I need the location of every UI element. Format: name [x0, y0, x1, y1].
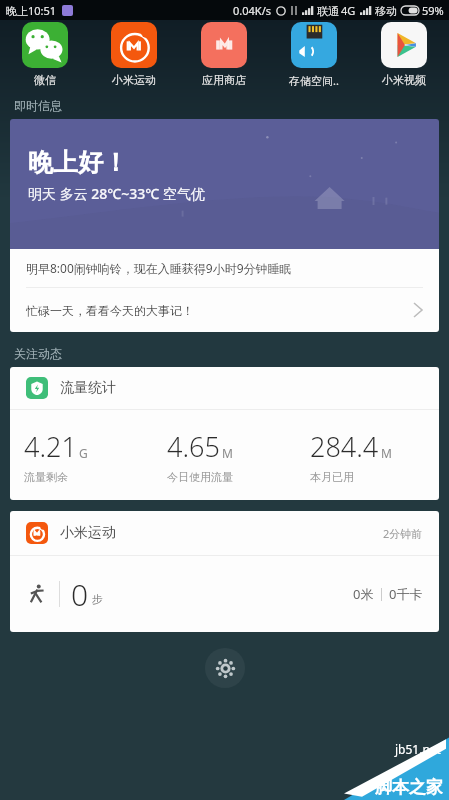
staticText: 0 [71, 574, 89, 615]
staticText: 明早8:00闹钟响铃，现在入睡获得9小时9分钟睡眠 [26, 260, 292, 276]
staticText: 流量剩余 [24, 470, 68, 484]
staticText: 4.65 [167, 428, 220, 465]
staticText: 4G [341, 3, 356, 18]
staticText: 小米视频 [382, 73, 426, 87]
staticText: 忙碌一天，看看今天的大事记！ [26, 303, 194, 318]
staticText: 关注动态 [14, 346, 62, 361]
button[interactable]: 小米视频 [359, 22, 449, 87]
button[interactable]: 设置 [205, 648, 245, 688]
button[interactable]: 小米运动 [89, 22, 179, 87]
staticText: 晚上10:51 [6, 3, 57, 18]
staticText: G [79, 445, 88, 461]
staticText: 284.4 [310, 428, 379, 465]
staticText: M [381, 445, 392, 461]
button[interactable]: 存储空间.. [269, 22, 359, 88]
button[interactable]: 小米运动 [10, 511, 439, 632]
staticText: 晚上好！ [28, 147, 128, 178]
staticText: 移动 [375, 4, 397, 18]
staticText: 流量统计 [60, 379, 116, 397]
button[interactable]: 晚上好！ [10, 119, 439, 332]
staticText: 本月已用 [310, 470, 354, 484]
staticText: 即时信息 [14, 98, 62, 113]
staticText: 存储空间.. [289, 73, 339, 88]
staticText: 今日使用流量 [167, 470, 233, 484]
staticText: 4.21 [24, 428, 77, 465]
staticText: 应用商店 [202, 73, 246, 87]
staticText: 小米运动 [112, 73, 156, 87]
staticText: 0.04K/s [233, 3, 271, 18]
staticText: 0米 [353, 585, 374, 603]
staticText: M [222, 445, 233, 461]
button[interactable]: 流量统计 [10, 367, 439, 500]
staticText: 小米运动 [60, 524, 116, 542]
staticText: 2分钟前 [383, 526, 423, 541]
button[interactable]: 微信 [0, 22, 89, 87]
staticText: 0千卡 [389, 585, 423, 603]
staticText: 明天 多云 28℃~33℃ 空气优 [28, 184, 205, 203]
staticText: jb51.net [395, 741, 441, 757]
button[interactable]: 明早8:00闹钟响铃，现在入睡获得9小时9分钟睡眠 [10, 249, 439, 287]
button[interactable]: 应用商店 [179, 22, 269, 87]
button[interactable]: 忙碌一天，看看今天的大事记！ [10, 288, 439, 332]
staticText: 脚本之家 [375, 777, 443, 798]
staticText: 联通 [317, 4, 339, 18]
staticText: 步 [92, 592, 103, 606]
staticText: 59% [422, 3, 444, 18]
staticText: 微信 [34, 73, 56, 87]
